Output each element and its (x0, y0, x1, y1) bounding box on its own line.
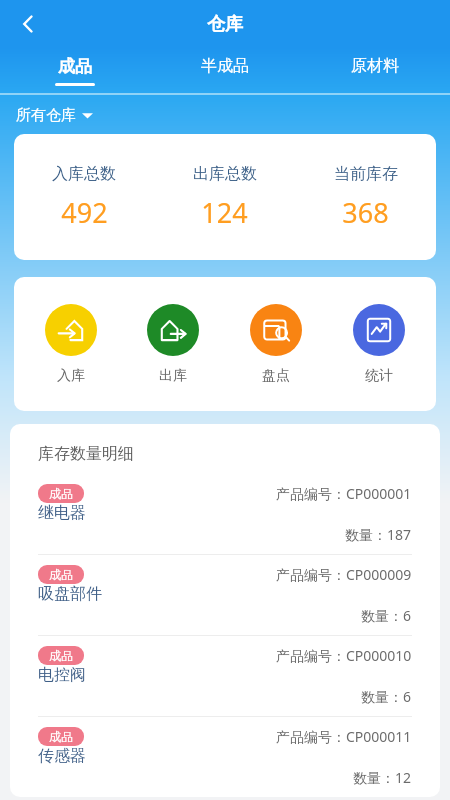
button[interactable]: 成品 (0, 48, 150, 93)
staticText: 数量：6 (361, 687, 412, 706)
staticText: 成品 (49, 729, 73, 744)
button[interactable]: 所有仓库 (16, 106, 93, 125)
staticText: 产品编号：CP000009 (276, 565, 412, 584)
button[interactable]: 原材料 (300, 48, 450, 93)
staticText: 产品编号：CP000001 (276, 484, 412, 503)
staticText: 库存数量明细 (38, 444, 134, 464)
staticText: 半成品 (201, 56, 249, 76)
staticText: 492 (61, 194, 108, 231)
staticText: 继电器 (38, 503, 86, 523)
staticText: 成品 (49, 486, 73, 501)
button[interactable]: 入库 (20, 304, 122, 385)
button[interactable]: 成品 (10, 636, 440, 716)
button[interactable]: Back (6, 2, 50, 46)
button[interactable]: 成品 (10, 474, 440, 554)
staticText: 当前库存 (334, 164, 398, 184)
staticText: 电控阀 (38, 665, 86, 685)
staticText: 数量：187 (345, 525, 412, 544)
staticText: 成品 (49, 648, 73, 663)
staticText: 数量：6 (361, 606, 412, 625)
staticText: 所有仓库 (16, 106, 76, 125)
staticText: 仓库 (207, 13, 243, 36)
staticText: 数量：12 (353, 768, 412, 787)
button[interactable]: 统计 (327, 304, 430, 385)
staticText: 产品编号：CP000010 (276, 646, 412, 665)
staticText: 原材料 (351, 56, 399, 76)
staticText: 吸盘部件 (38, 584, 102, 604)
staticText: 成品 (58, 56, 92, 77)
staticText: 出库 (159, 367, 187, 385)
staticText: 产品编号：CP000011 (276, 727, 412, 746)
button[interactable]: 出库 (122, 304, 224, 385)
button[interactable]: 成品 (10, 555, 440, 635)
staticText: 124 (201, 194, 248, 231)
staticText: 368 (342, 194, 389, 231)
button[interactable]: 盘点 (224, 304, 327, 385)
button[interactable]: 半成品 (150, 48, 300, 93)
button[interactable]: 成品 (10, 717, 440, 797)
staticText: 成品 (49, 567, 73, 582)
staticText: 盘点 (262, 367, 290, 385)
staticText: 传感器 (38, 746, 86, 766)
staticText: 统计 (365, 367, 393, 385)
staticText: 入库 (57, 367, 85, 385)
staticText: 入库总数 (52, 164, 116, 184)
staticText: 出库总数 (193, 164, 257, 184)
